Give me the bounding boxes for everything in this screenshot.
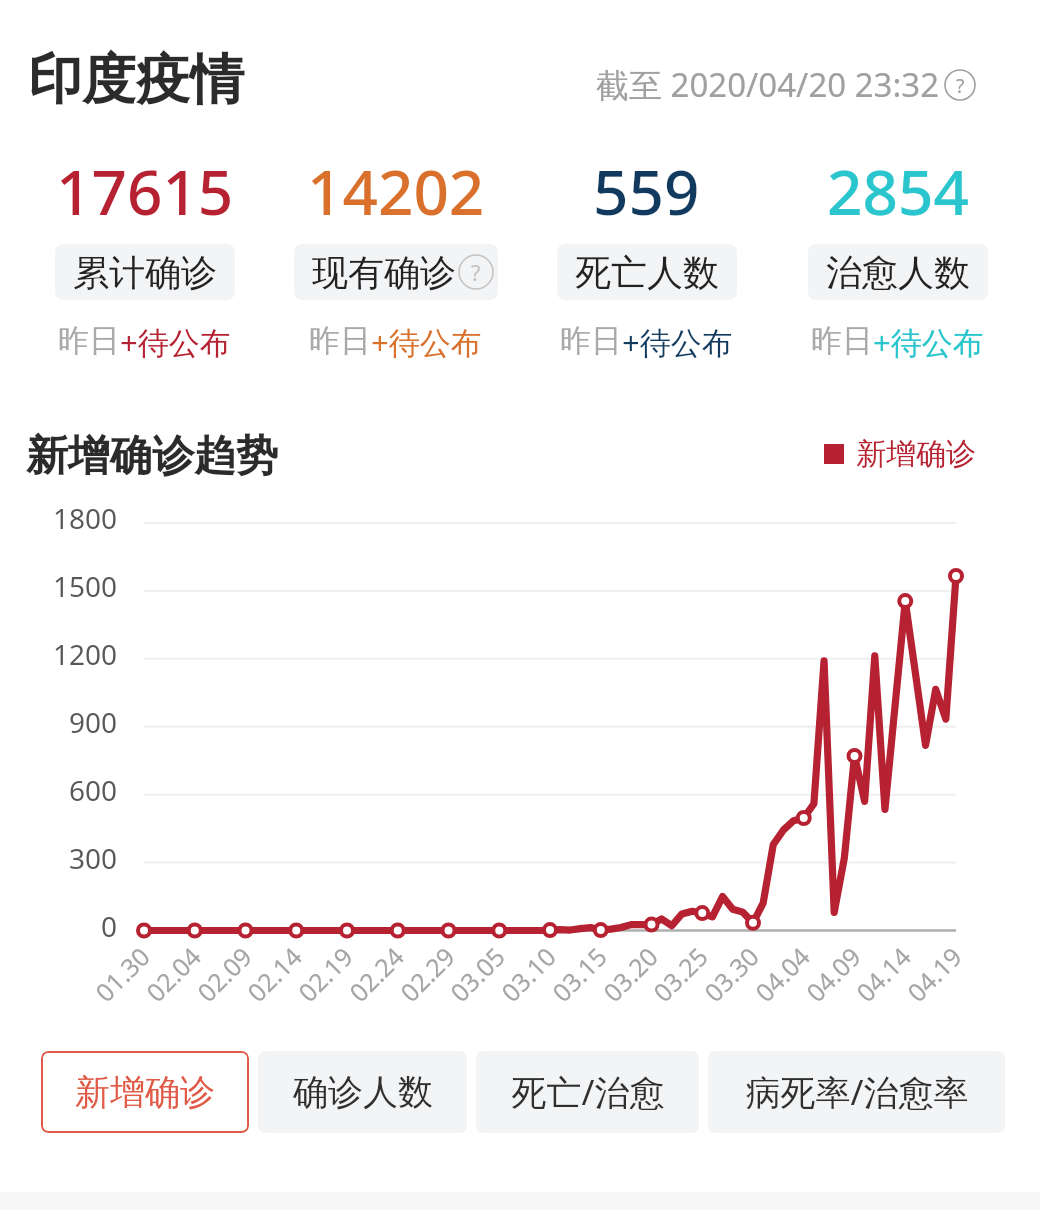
staticText: 截至 2020/04/20 23:32 <box>596 62 940 107</box>
staticText: 1200 <box>53 635 118 673</box>
staticText: 02.19 <box>290 939 360 1009</box>
staticText: 600 <box>69 771 118 809</box>
button[interactable]: 确诊人数 <box>258 1051 467 1133</box>
button[interactable]: More information <box>944 69 976 101</box>
staticText: 04.09 <box>798 939 868 1009</box>
staticText: 04.04 <box>747 939 817 1009</box>
staticText: 14202 <box>307 149 485 233</box>
button[interactable]: 559 <box>521 149 772 363</box>
button[interactable]: 新增确诊 <box>41 1051 249 1133</box>
button[interactable]: 新增确诊 <box>824 435 976 473</box>
staticText: 03.25 <box>645 939 715 1009</box>
staticText: +待公布 <box>120 321 231 363</box>
staticText: +待公布 <box>371 321 482 363</box>
staticText: 确诊人数 <box>293 1070 433 1114</box>
staticText: 昨日 <box>560 321 622 360</box>
staticText: 2854 <box>827 149 969 233</box>
button[interactable]: 病死率/治愈率 <box>708 1051 1005 1133</box>
staticText: 新增确诊 <box>75 1070 215 1114</box>
staticText: +待公布 <box>622 321 733 363</box>
staticText: 累计确诊 <box>73 250 217 295</box>
staticText: 死亡/治愈 <box>511 1068 665 1116</box>
button[interactable]: 死亡/治愈 <box>476 1051 699 1133</box>
staticText: 印度疫情 <box>28 46 244 114</box>
staticText: 02.14 <box>239 939 309 1009</box>
button[interactable]: 截至 2020/04/20 23:32 <box>596 62 976 107</box>
staticText: 治愈人数 <box>826 250 970 295</box>
button[interactable]: More information <box>458 254 494 290</box>
staticText: 02.09 <box>189 939 259 1009</box>
staticText: 03.10 <box>493 939 563 1009</box>
staticText: 现有确诊 <box>312 250 456 295</box>
staticText: 900 <box>69 703 118 741</box>
staticText: 559 <box>593 149 700 233</box>
staticText: 300 <box>69 839 118 877</box>
button[interactable]: 14202 <box>270 149 521 363</box>
staticText: 02.29 <box>392 939 462 1009</box>
staticText: 04.14 <box>848 939 918 1009</box>
staticText: 新增确诊趋势 <box>26 430 278 483</box>
staticText: 新增确诊 <box>856 435 976 473</box>
staticText: 02.04 <box>138 939 208 1009</box>
staticText: 17615 <box>56 149 234 233</box>
staticText: 死亡人数 <box>575 250 719 295</box>
staticText: 03.15 <box>544 939 614 1009</box>
staticText: 0 <box>101 907 118 945</box>
button[interactable]: 17615 <box>19 149 270 363</box>
staticText: 昨日 <box>309 321 371 360</box>
staticText: 昨日 <box>811 321 873 360</box>
staticText: 03.20 <box>595 939 665 1009</box>
staticText: 昨日 <box>58 321 120 360</box>
staticText: 02.24 <box>341 939 411 1009</box>
staticText: 03.30 <box>696 939 766 1009</box>
staticText: +待公布 <box>873 321 984 363</box>
staticText: 病死率/治愈率 <box>745 1068 969 1116</box>
staticText: 03.05 <box>442 939 512 1009</box>
button[interactable]: 2854 <box>772 149 1023 363</box>
staticText: 04.19 <box>899 939 969 1009</box>
staticText: 1500 <box>53 567 118 605</box>
staticText: 1800 <box>53 499 118 537</box>
staticText: 01.30 <box>87 939 157 1009</box>
staticText: ? <box>471 258 481 287</box>
staticText: ? <box>956 72 965 98</box>
